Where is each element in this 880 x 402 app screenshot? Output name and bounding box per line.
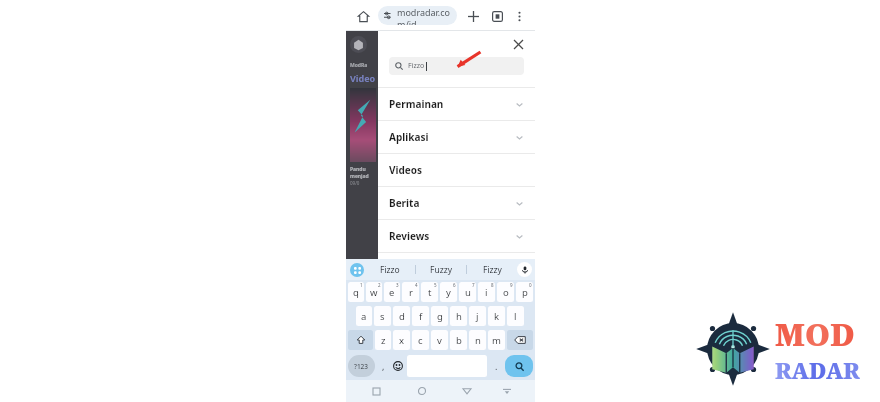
button[interactable]: .	[488, 354, 504, 378]
staticText: x	[399, 334, 405, 347]
button[interactable]: ,	[376, 354, 390, 378]
staticText: e	[389, 286, 395, 299]
button[interactable]: g	[431, 306, 448, 326]
button[interactable]: Keyboard options	[350, 263, 364, 277]
button[interactable]: Search	[505, 355, 533, 377]
staticText: b	[456, 334, 462, 347]
staticText: 3	[396, 282, 399, 288]
button[interactable]: Voice input	[517, 262, 532, 277]
button[interactable]: Backspace	[507, 330, 533, 350]
button[interactable]: p	[516, 282, 533, 302]
staticText: Berita	[389, 196, 420, 210]
button[interactable]: Back	[457, 381, 477, 401]
button[interactable]: h	[450, 306, 467, 326]
button[interactable]: a	[356, 306, 372, 326]
staticText: Pandu	[350, 166, 366, 173]
button[interactable]: Berita	[378, 187, 535, 219]
staticText: 1	[360, 282, 363, 288]
staticText: w	[370, 286, 378, 299]
staticText: 7	[472, 282, 475, 288]
staticText: 8	[491, 282, 494, 288]
staticText: m	[492, 334, 501, 347]
button[interactable]: j	[469, 306, 486, 326]
staticText: g	[437, 310, 443, 323]
button[interactable]: More options	[510, 7, 528, 25]
staticText: 6	[453, 282, 456, 288]
button[interactable]: Hide keyboard	[498, 382, 516, 400]
button[interactable]: modradar.com/id	[378, 6, 457, 25]
staticText: Fizzy	[483, 264, 502, 276]
staticText: ModRa	[350, 62, 368, 69]
button[interactable]: m	[488, 330, 505, 350]
button[interactable]: s	[374, 306, 391, 326]
button[interactable]: t	[421, 282, 438, 302]
staticText: Fizzo	[380, 264, 400, 276]
staticText: Permainan	[389, 97, 444, 111]
staticText: o	[503, 286, 509, 299]
staticText: ,	[382, 360, 385, 372]
button[interactable]: o	[497, 282, 514, 302]
button[interactable]: q	[348, 282, 364, 302]
button[interactable]: r	[402, 282, 419, 302]
staticText: .	[495, 360, 498, 372]
staticText: Fuzzy	[430, 264, 452, 276]
button[interactable]: Videos	[378, 154, 535, 186]
button[interactable]: ?123	[348, 355, 375, 377]
staticText: l	[514, 310, 517, 323]
staticText: 9	[510, 282, 513, 288]
staticText: 09/0	[350, 180, 360, 186]
button[interactable]: Fizzy	[467, 259, 517, 280]
button[interactable]: x	[393, 330, 410, 350]
button[interactable]: Fizzo	[389, 57, 524, 75]
button[interactable]: Fizzo	[364, 259, 415, 280]
button[interactable]: Home	[412, 381, 432, 401]
staticText: Video	[350, 72, 376, 84]
staticText: p	[522, 286, 528, 299]
button[interactable]: d	[393, 306, 410, 326]
button[interactable]: Tab switcher	[487, 6, 507, 26]
button[interactable]: i	[478, 282, 495, 302]
staticText: a	[361, 310, 367, 323]
button[interactable]: b	[450, 330, 467, 350]
staticText: n	[475, 334, 481, 347]
button[interactable]: Aplikasi	[378, 121, 535, 153]
staticText: z	[381, 334, 386, 347]
staticText: c	[418, 334, 423, 347]
button[interactable]: Home	[353, 6, 373, 26]
staticText: r	[409, 286, 413, 299]
button[interactable]: New tab	[463, 6, 483, 26]
button[interactable]: k	[488, 306, 505, 326]
button[interactable]: v	[431, 330, 448, 350]
staticText: h	[456, 310, 462, 323]
button[interactable]: e	[384, 282, 400, 302]
button[interactable]: Fuzzy	[416, 259, 466, 280]
button[interactable]: l	[507, 306, 524, 326]
button[interactable]: y	[440, 282, 457, 302]
staticText: ?123	[354, 362, 369, 371]
button[interactable]: Recent apps	[366, 381, 386, 401]
button[interactable]: Emoji	[390, 354, 406, 378]
staticText: d	[399, 310, 405, 323]
button[interactable]: Permainan	[378, 88, 535, 120]
staticText: u	[465, 286, 471, 299]
staticText: menjad	[350, 173, 369, 180]
staticText: 4	[415, 282, 418, 288]
button[interactable]: Reviews	[378, 220, 535, 252]
button[interactable]: u	[459, 282, 476, 302]
button[interactable]: z	[375, 330, 391, 350]
staticText: y	[446, 286, 451, 299]
button[interactable]: w	[366, 282, 382, 302]
button[interactable]: c	[412, 330, 429, 350]
button[interactable]: Close	[509, 35, 527, 53]
staticText: modradar.com/id	[397, 6, 451, 25]
button[interactable]: f	[412, 306, 429, 326]
staticText: 2	[378, 282, 381, 288]
staticText: MOD	[775, 313, 855, 355]
staticText: s	[380, 310, 385, 323]
staticText: j	[476, 310, 479, 323]
staticText: Videos	[389, 163, 423, 177]
button[interactable]: Shift	[348, 330, 373, 350]
staticText: f	[419, 310, 423, 323]
button[interactable]: n	[469, 330, 486, 350]
